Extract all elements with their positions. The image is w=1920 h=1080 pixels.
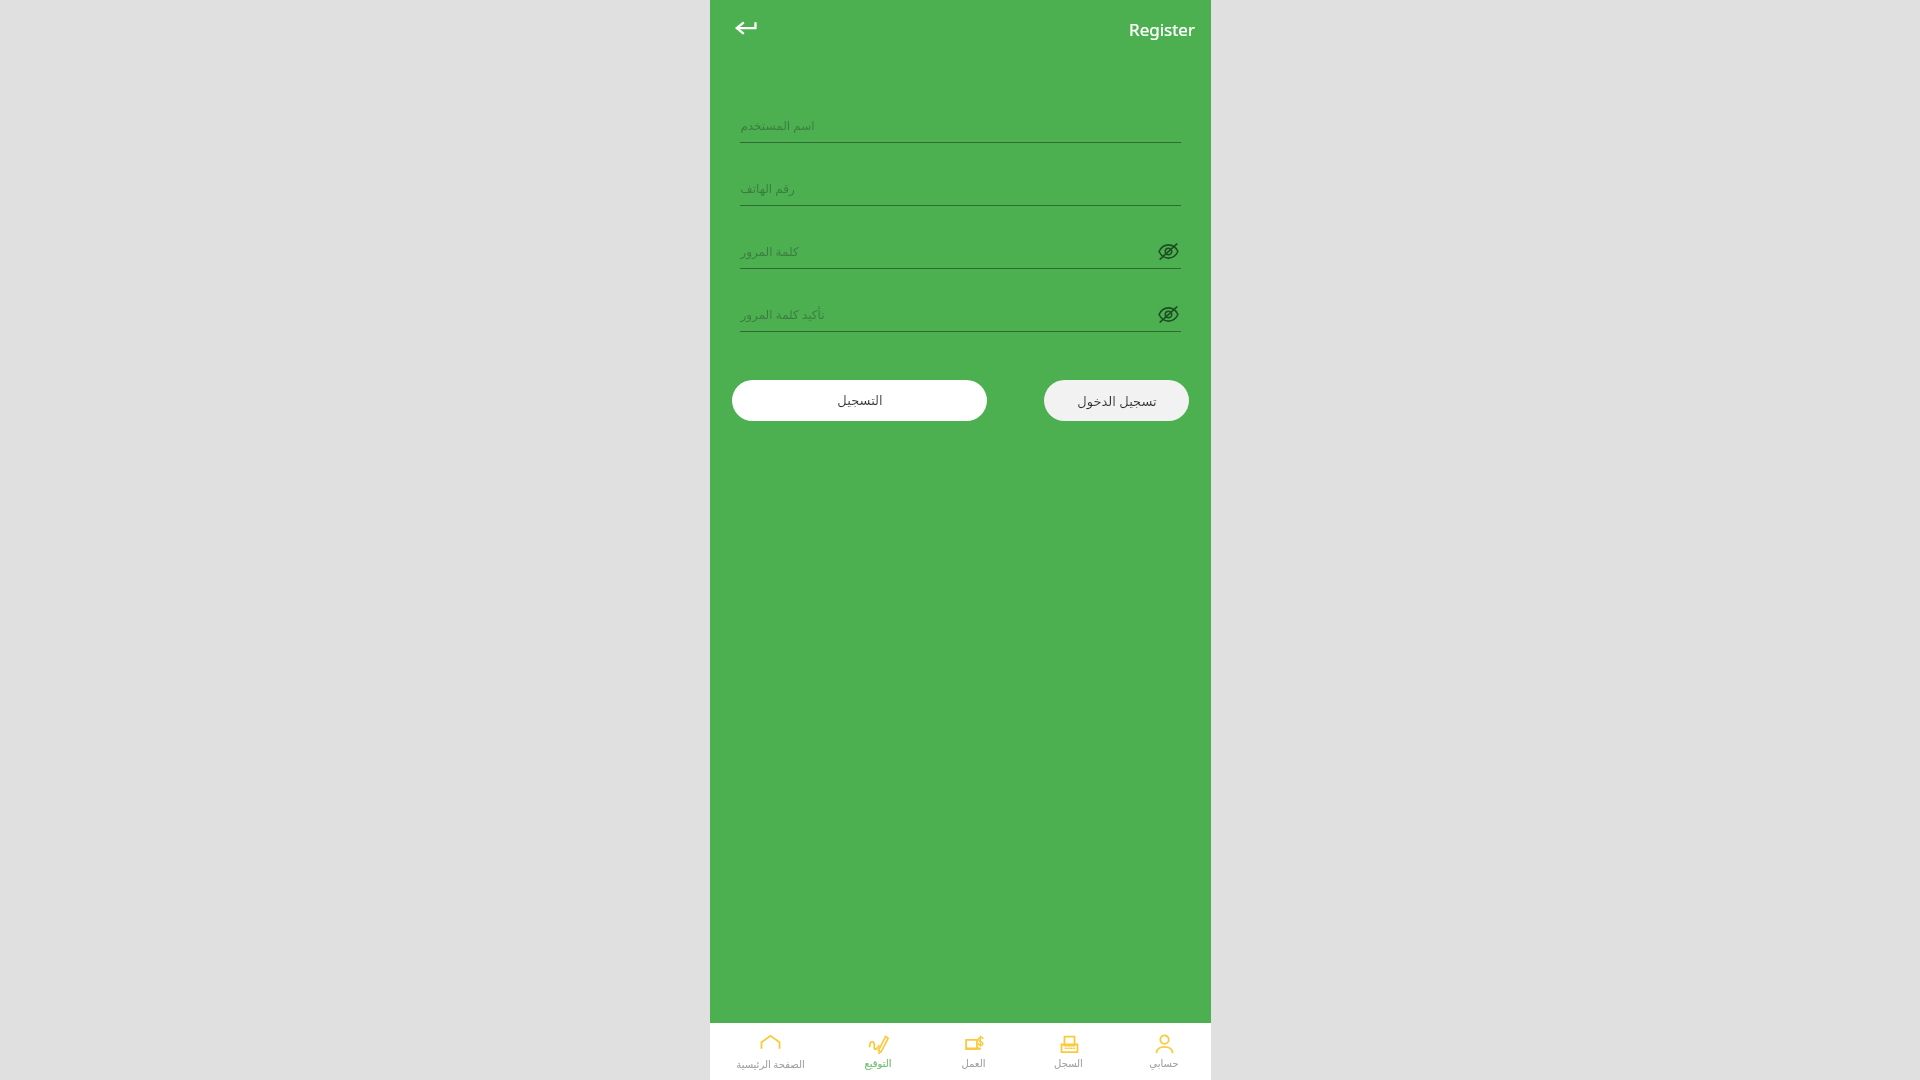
button[interactable]: Toggle password visibility	[1155, 238, 1181, 264]
button[interactable]: رقم الهاتف	[740, 173, 1181, 203]
staticText: كلمة المرور	[740, 243, 799, 259]
staticText: حسابي	[1149, 1058, 1179, 1070]
staticText: تأكيد كلمة المرور	[740, 306, 825, 322]
staticText: اسم المستخدم	[740, 117, 815, 133]
button[interactable]: العمل	[926, 1023, 1021, 1080]
staticText: الصفحة الرئيسية	[736, 1057, 805, 1071]
button[interactable]: تسجيل الدخول	[1044, 380, 1189, 421]
button[interactable]: كلمة المرور	[740, 236, 1181, 266]
button[interactable]: التوقيع	[830, 1023, 926, 1080]
staticText: التوقيع	[864, 1058, 892, 1070]
staticText: Register	[1129, 18, 1195, 41]
staticText: تسجيل الدخول	[1077, 392, 1157, 410]
staticText: رقم الهاتف	[740, 180, 795, 196]
button[interactable]: Back	[724, 7, 768, 51]
staticText: السجل	[1054, 1058, 1083, 1070]
staticText: العمل	[961, 1058, 986, 1070]
button[interactable]: التسجيل	[732, 380, 987, 421]
button[interactable]: اسم المستخدم	[740, 110, 1181, 140]
button[interactable]: تأكيد كلمة المرور	[740, 299, 1181, 329]
button[interactable]: السجل	[1021, 1023, 1116, 1080]
button[interactable]: حسابي	[1116, 1023, 1211, 1080]
button[interactable]: الصفحة الرئيسية	[710, 1023, 830, 1080]
button[interactable]: Toggle password visibility	[1155, 301, 1181, 327]
staticText: التسجيل	[837, 393, 883, 408]
